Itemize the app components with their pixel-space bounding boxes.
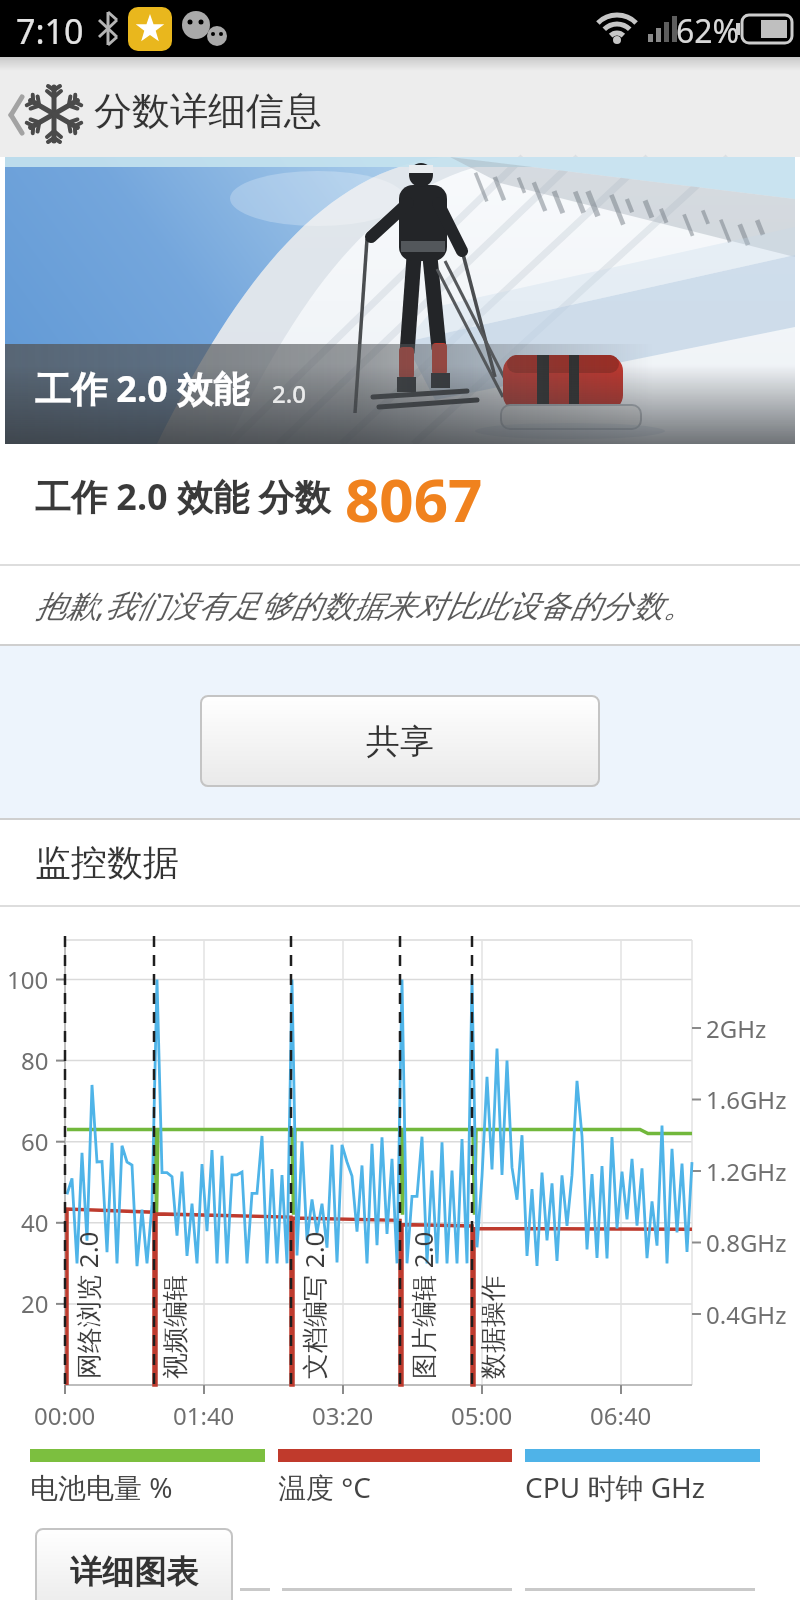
staticText: 8067 (345, 458, 483, 540)
button[interactable]: 详细图表 (35, 1528, 233, 1600)
button[interactable] (0, 57, 90, 157)
staticText: 抱歉,我们没有足够的数据来对比此设备的分数。 (35, 584, 694, 626)
button[interactable]: 共享 (200, 695, 600, 787)
staticText: 详细图表 (70, 1552, 198, 1592)
staticText: 2.0 (272, 377, 306, 410)
staticText: 7:10 (16, 8, 84, 54)
staticText: 分数详细信息 (94, 87, 322, 135)
staticText: 62% (676, 9, 740, 53)
staticText: 工作 2.0 效能 (35, 364, 250, 413)
staticText: 监控数据 (35, 840, 179, 885)
staticText: 共享 (366, 720, 434, 763)
staticText: 工作 2.0 效能 分数 (35, 472, 331, 521)
